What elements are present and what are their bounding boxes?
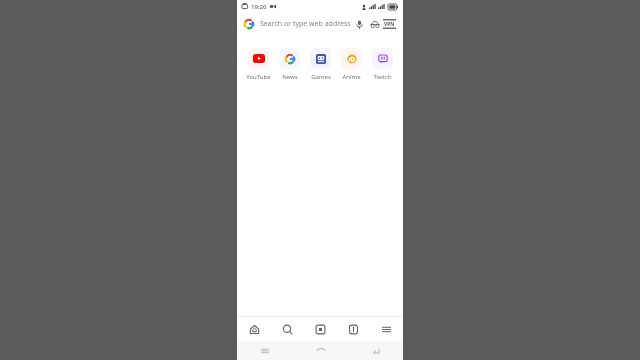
staticText: 19:20 xyxy=(251,3,267,11)
button[interactable]: Tabs xyxy=(304,317,337,341)
button[interactable]: Home xyxy=(293,341,348,360)
button[interactable]: VPN xyxy=(383,19,396,29)
button[interactable]: Shield xyxy=(337,317,370,341)
button[interactable]: Games xyxy=(305,48,336,81)
button[interactable]: Menu xyxy=(370,317,403,341)
button[interactable]: Back xyxy=(348,341,403,360)
button[interactable]: Voice search xyxy=(353,18,366,31)
button[interactable]: Anime xyxy=(336,48,367,81)
staticText: News xyxy=(282,73,298,81)
staticText: Games xyxy=(311,73,331,81)
staticText: Anime xyxy=(342,73,361,81)
staticText: VPN xyxy=(384,21,395,28)
button[interactable]: Incognito mode xyxy=(368,18,381,31)
staticText: YouTube xyxy=(246,73,271,81)
button[interactable]: YouTube xyxy=(242,48,274,81)
button[interactable]: Home xyxy=(237,317,271,341)
button[interactable]: Recent apps xyxy=(237,341,293,360)
button[interactable]: Search xyxy=(271,317,304,341)
staticText: Search or type web address xyxy=(260,19,353,29)
button[interactable]: Twitch xyxy=(367,48,398,81)
staticText: Twitch xyxy=(373,73,392,81)
button[interactable]: News xyxy=(274,48,305,81)
button[interactable]: Search or type web address xyxy=(237,13,403,35)
